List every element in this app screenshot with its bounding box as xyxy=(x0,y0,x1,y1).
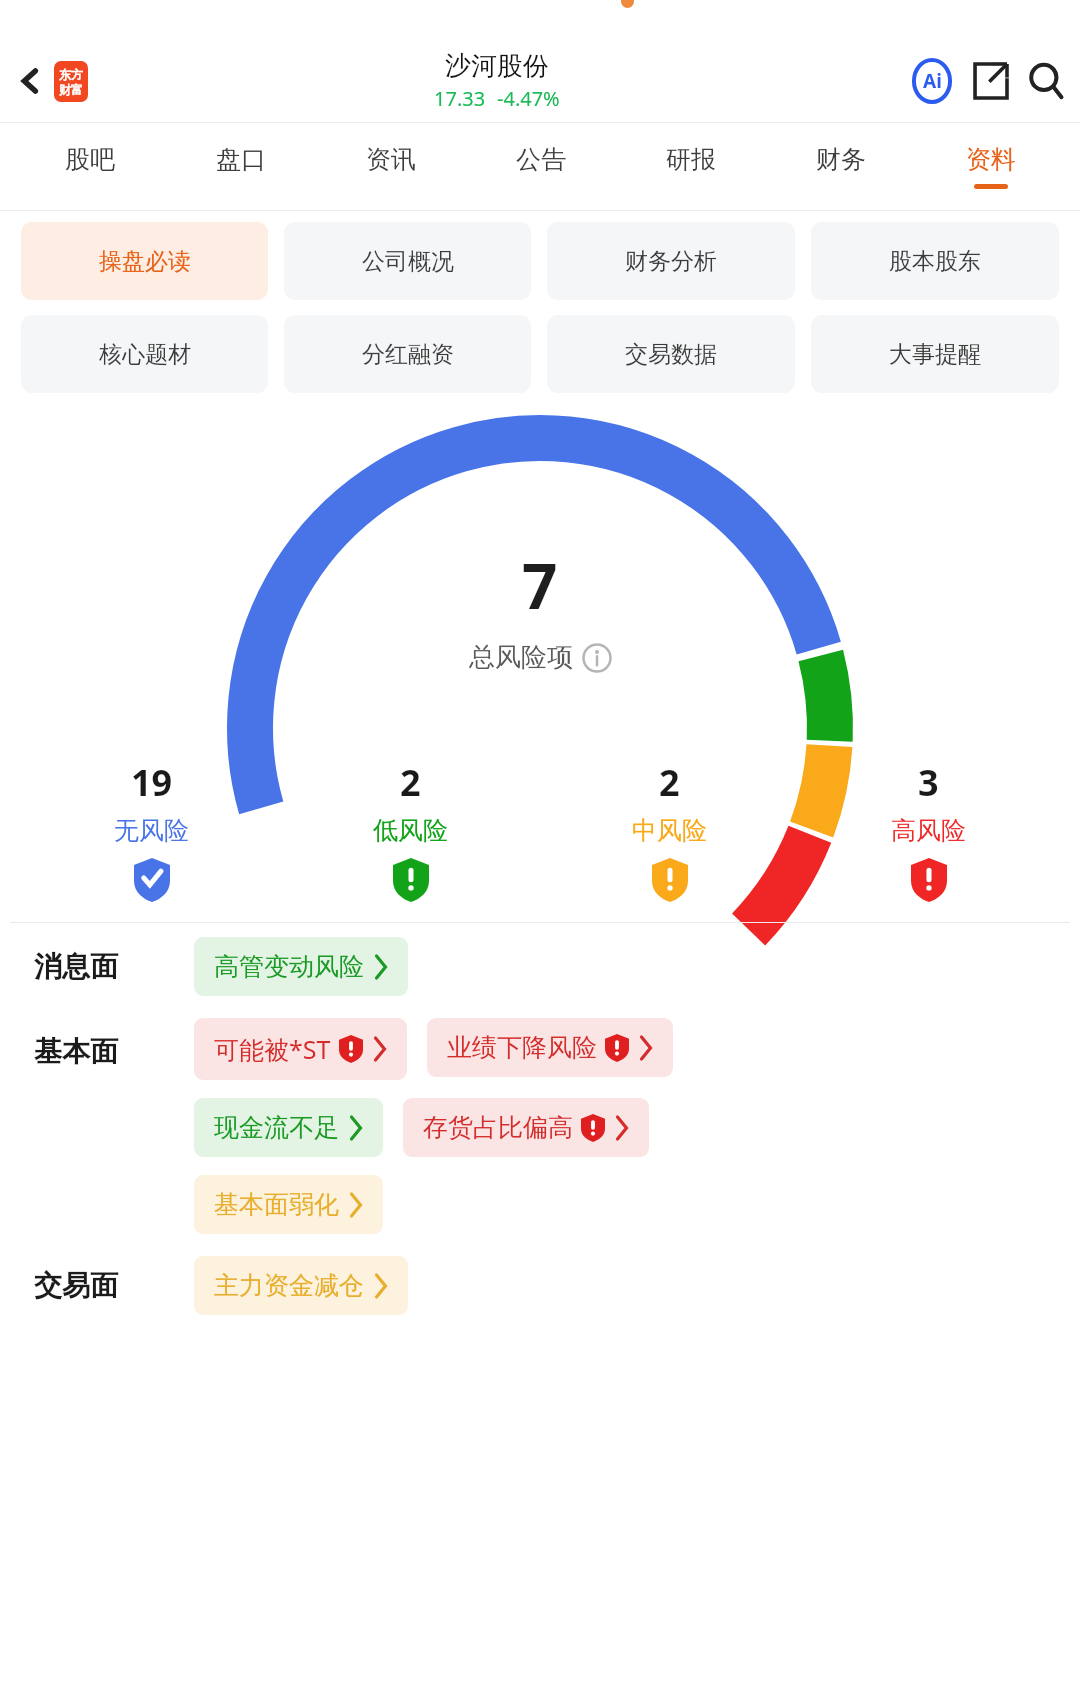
button[interactable]: 可能被*ST xyxy=(194,1018,407,1080)
staticText: 存货占比偏高 xyxy=(423,1112,573,1143)
staticText: 大事提醒 xyxy=(889,340,981,369)
staticText: 高管变动风险 xyxy=(214,951,364,982)
staticText: 盘口 xyxy=(216,144,266,175)
staticText: 股本股东 xyxy=(889,247,981,276)
staticText: 核心题材 xyxy=(99,340,191,369)
staticText: 交易面 xyxy=(34,1268,194,1303)
button[interactable]: 公司概况 xyxy=(284,222,531,300)
button[interactable]: East Money xyxy=(54,61,88,102)
button[interactable]: 核心题材 xyxy=(21,315,268,393)
button[interactable]: Search xyxy=(1020,55,1072,107)
staticText: 财务分析 xyxy=(625,247,717,276)
staticText: 2 xyxy=(400,758,421,807)
staticText: -4.47% xyxy=(497,85,560,112)
staticText: 公司概况 xyxy=(362,247,454,276)
staticText: 基本面弱化 xyxy=(214,1189,339,1220)
button[interactable]: 存货占比偏高 xyxy=(403,1098,649,1157)
button[interactable]: 交易数据 xyxy=(547,315,795,393)
staticText: 分红融资 xyxy=(362,340,454,369)
staticText: 消息面 xyxy=(34,949,194,984)
staticText: 总风险项 xyxy=(469,641,573,674)
button[interactable]: AI xyxy=(906,55,958,107)
button[interactable]: 分红融资 xyxy=(284,315,531,393)
button[interactable]: Back xyxy=(8,58,54,104)
button[interactable]: 2 xyxy=(540,758,799,902)
staticText: 财富 xyxy=(59,82,83,97)
button[interactable]: 业绩下降风险 xyxy=(427,1018,673,1077)
staticText: 交易数据 xyxy=(625,340,717,369)
staticText: 无风险 xyxy=(114,815,189,846)
staticText: 基本面 xyxy=(34,1034,118,1069)
staticText: 资讯 xyxy=(366,144,416,175)
staticText: 东方 xyxy=(59,67,83,82)
staticText: 研报 xyxy=(666,144,716,175)
button[interactable]: 资料 xyxy=(916,123,1066,210)
staticText: 财务 xyxy=(816,144,866,175)
button[interactable]: 财务分析 xyxy=(547,222,795,300)
staticText: 股吧 xyxy=(65,144,115,175)
staticText: 3 xyxy=(918,758,939,807)
staticText: 操盘必读 xyxy=(99,247,191,276)
staticText: 可能被*ST xyxy=(214,1032,331,1066)
button[interactable]: 大事提醒 xyxy=(811,315,1059,393)
staticText: Ai xyxy=(923,68,942,94)
staticText: 沙河股份 xyxy=(445,50,549,83)
button[interactable]: 3 xyxy=(799,758,1058,902)
staticText: 业绩下降风险 xyxy=(447,1032,597,1063)
staticText: 高风险 xyxy=(891,815,966,846)
button[interactable]: 19 xyxy=(22,758,281,902)
button[interactable]: 股本股东 xyxy=(811,222,1059,300)
button[interactable]: 基本面弱化 xyxy=(194,1175,383,1234)
staticText: 中风险 xyxy=(632,815,707,846)
button[interactable]: 研报 xyxy=(616,123,766,210)
staticText: 2 xyxy=(659,758,680,807)
button[interactable]: 现金流不足 xyxy=(194,1098,383,1157)
staticText: 公告 xyxy=(516,144,566,175)
staticText: 17.33 xyxy=(434,85,486,112)
staticText: 主力资金减仓 xyxy=(214,1270,364,1301)
button[interactable]: 股吧 xyxy=(14,123,165,210)
staticText: 现金流不足 xyxy=(214,1112,339,1143)
staticText: 低风险 xyxy=(373,815,448,846)
button[interactable]: 2 xyxy=(281,758,540,902)
button[interactable]: 盘口 xyxy=(165,123,316,210)
button[interactable]: 操盘必读 xyxy=(21,222,268,300)
button[interactable]: 公告 xyxy=(466,123,616,210)
button[interactable]: Share xyxy=(964,55,1016,107)
button[interactable]: 资讯 xyxy=(316,123,466,210)
button[interactable]: 财务 xyxy=(766,123,916,210)
button[interactable]: 高管变动风险 xyxy=(194,937,408,996)
staticText: 7 xyxy=(522,543,558,627)
staticText: 19 xyxy=(131,758,173,807)
button[interactable]: 主力资金减仓 xyxy=(194,1256,408,1315)
staticText: 资料 xyxy=(966,144,1016,175)
